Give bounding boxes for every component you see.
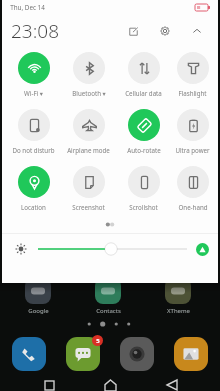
button[interactable]: Airplane mode xyxy=(61,109,116,154)
staticText: Location xyxy=(21,203,46,211)
button[interactable]: XTheme xyxy=(154,278,202,315)
button[interactable]: Flashlight xyxy=(171,52,214,97)
staticText: Google xyxy=(28,307,49,315)
staticText: Contacts xyxy=(96,307,121,315)
staticText: Thu, Dec 14 xyxy=(10,3,45,12)
button[interactable]: Recents xyxy=(36,379,62,391)
button[interactable]: Collapse xyxy=(186,20,208,42)
button[interactable]: App xyxy=(66,337,100,371)
button[interactable]: Back xyxy=(159,379,185,391)
staticText: Flashlight xyxy=(178,89,207,97)
button[interactable]: One-hand xyxy=(171,166,214,211)
button[interactable]: App xyxy=(120,337,154,371)
button[interactable]: App xyxy=(174,337,208,371)
staticText: 5 xyxy=(96,337,100,345)
button[interactable]: Screenshot xyxy=(61,166,116,211)
staticText: Airplane mode xyxy=(67,146,110,154)
button[interactable]: Brightness slider xyxy=(38,240,187,258)
staticText: One-hand xyxy=(178,203,208,211)
staticText: Bluetooth ▾ xyxy=(72,89,106,97)
button[interactable]: Auto-rotate xyxy=(116,109,171,154)
button[interactable]: App xyxy=(12,337,46,371)
staticText: XTheme xyxy=(167,307,190,315)
button[interactable]: Home xyxy=(97,379,123,391)
staticText: Auto-rotate xyxy=(127,146,161,154)
staticText: Screenshot xyxy=(72,203,105,211)
button[interactable]: Google xyxy=(14,278,62,315)
staticText: Ultra power xyxy=(175,146,210,154)
button[interactable]: Location xyxy=(6,166,61,211)
staticText: Do not disturb xyxy=(12,146,55,154)
button[interactable]: Auto brightness xyxy=(196,243,209,256)
staticText: Cellular data xyxy=(125,89,162,97)
button[interactable]: Scrollshot xyxy=(116,166,171,211)
staticText: Wi-Fi ▾ xyxy=(24,89,43,97)
staticText: 23:08 xyxy=(11,18,60,44)
button[interactable]: Edit xyxy=(122,20,144,42)
button[interactable]: Ultra power xyxy=(171,109,214,154)
button[interactable]: Cellular data xyxy=(116,52,171,97)
button[interactable]: Do not disturb xyxy=(6,109,61,154)
button[interactable]: Settings xyxy=(154,20,176,42)
button[interactable]: Contacts xyxy=(84,278,132,315)
button[interactable]: Wi-Fi ▾ xyxy=(6,52,61,97)
button[interactable]: Bluetooth ▾ xyxy=(61,52,116,97)
staticText: Scrollshot xyxy=(129,203,158,211)
button[interactable]: Brightness xyxy=(12,240,30,258)
